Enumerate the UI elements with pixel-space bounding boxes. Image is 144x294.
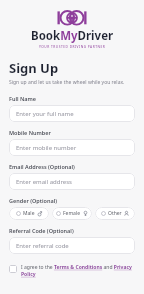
staticText: Enter referral code [16, 242, 69, 250]
staticText: YOUR TRUSTED DRIVING PARTNER [39, 45, 106, 49]
staticText: Female [63, 210, 81, 217]
staticText: Email Address (Optional) [9, 163, 75, 170]
button[interactable]: Enter mobile number [9, 139, 135, 156]
staticText: I agree to the Terms & Conditions and Pr… [21, 264, 135, 278]
button[interactable]: Enter email address [9, 173, 135, 190]
staticText: Sign up and let us take the wheel while … [9, 79, 125, 86]
other: Male [37, 211, 42, 216]
staticText: Enter your full name [16, 110, 74, 118]
other: Female [83, 211, 88, 216]
staticText: Male [23, 210, 35, 217]
staticText: Sign Up [9, 59, 59, 77]
staticText: BookMyDriver [31, 28, 114, 44]
button[interactable]: Female [52, 207, 92, 220]
staticText: Enter email address [16, 178, 72, 186]
button[interactable]: Enter your full name [9, 105, 135, 122]
button[interactable]: Enter referral code [9, 237, 135, 254]
staticText: Mobile Number [9, 129, 51, 136]
other: BookMyDriver logo [57, 9, 87, 26]
staticText: Gender (Optional) [9, 197, 57, 204]
staticText: Full Name [9, 95, 37, 102]
staticText: Referral Code (Optional) [9, 227, 74, 234]
button[interactable]: Other [95, 207, 135, 220]
other: Other [124, 211, 129, 216]
staticText: Enter mobile number [16, 144, 77, 152]
staticText: Other [108, 210, 122, 217]
button[interactable]: Male [9, 207, 49, 220]
button[interactable]: I agree to the Terms & Conditions and Pr… [9, 264, 135, 278]
